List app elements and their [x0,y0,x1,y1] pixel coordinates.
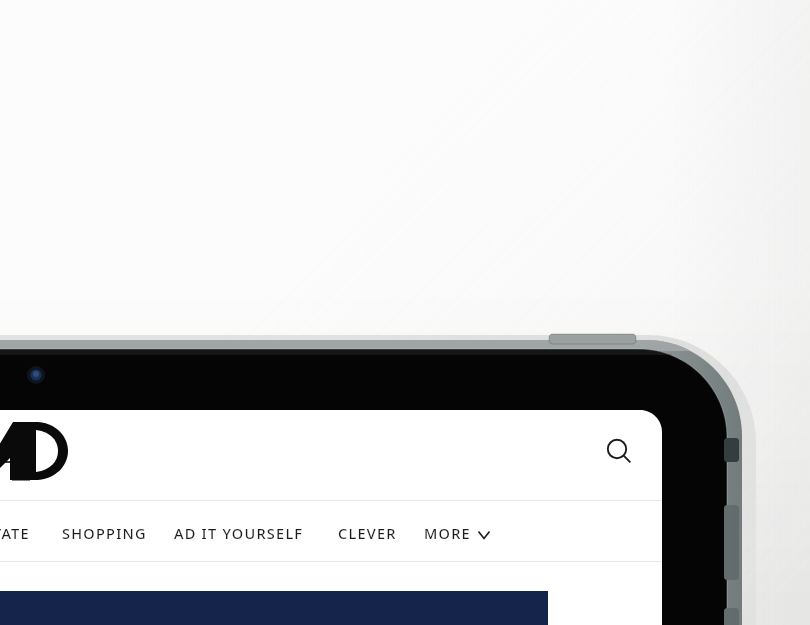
button[interactable]: SHOPPING [62,519,162,547]
staticText: TATE [0,523,30,543]
button[interactable]: CLEVER [338,519,416,547]
staticText: CLEVER [338,523,397,543]
button[interactable]: MORE [424,519,498,547]
staticText: AD IT YOURSELF [174,523,304,543]
button[interactable]: Search [598,431,638,471]
button[interactable]: AD home [0,418,82,490]
button[interactable]: TATE [0,519,53,547]
staticText: SHOPPING [62,523,147,543]
button[interactable]: AD IT YOURSELF [174,519,324,547]
staticText: MORE [424,523,471,543]
